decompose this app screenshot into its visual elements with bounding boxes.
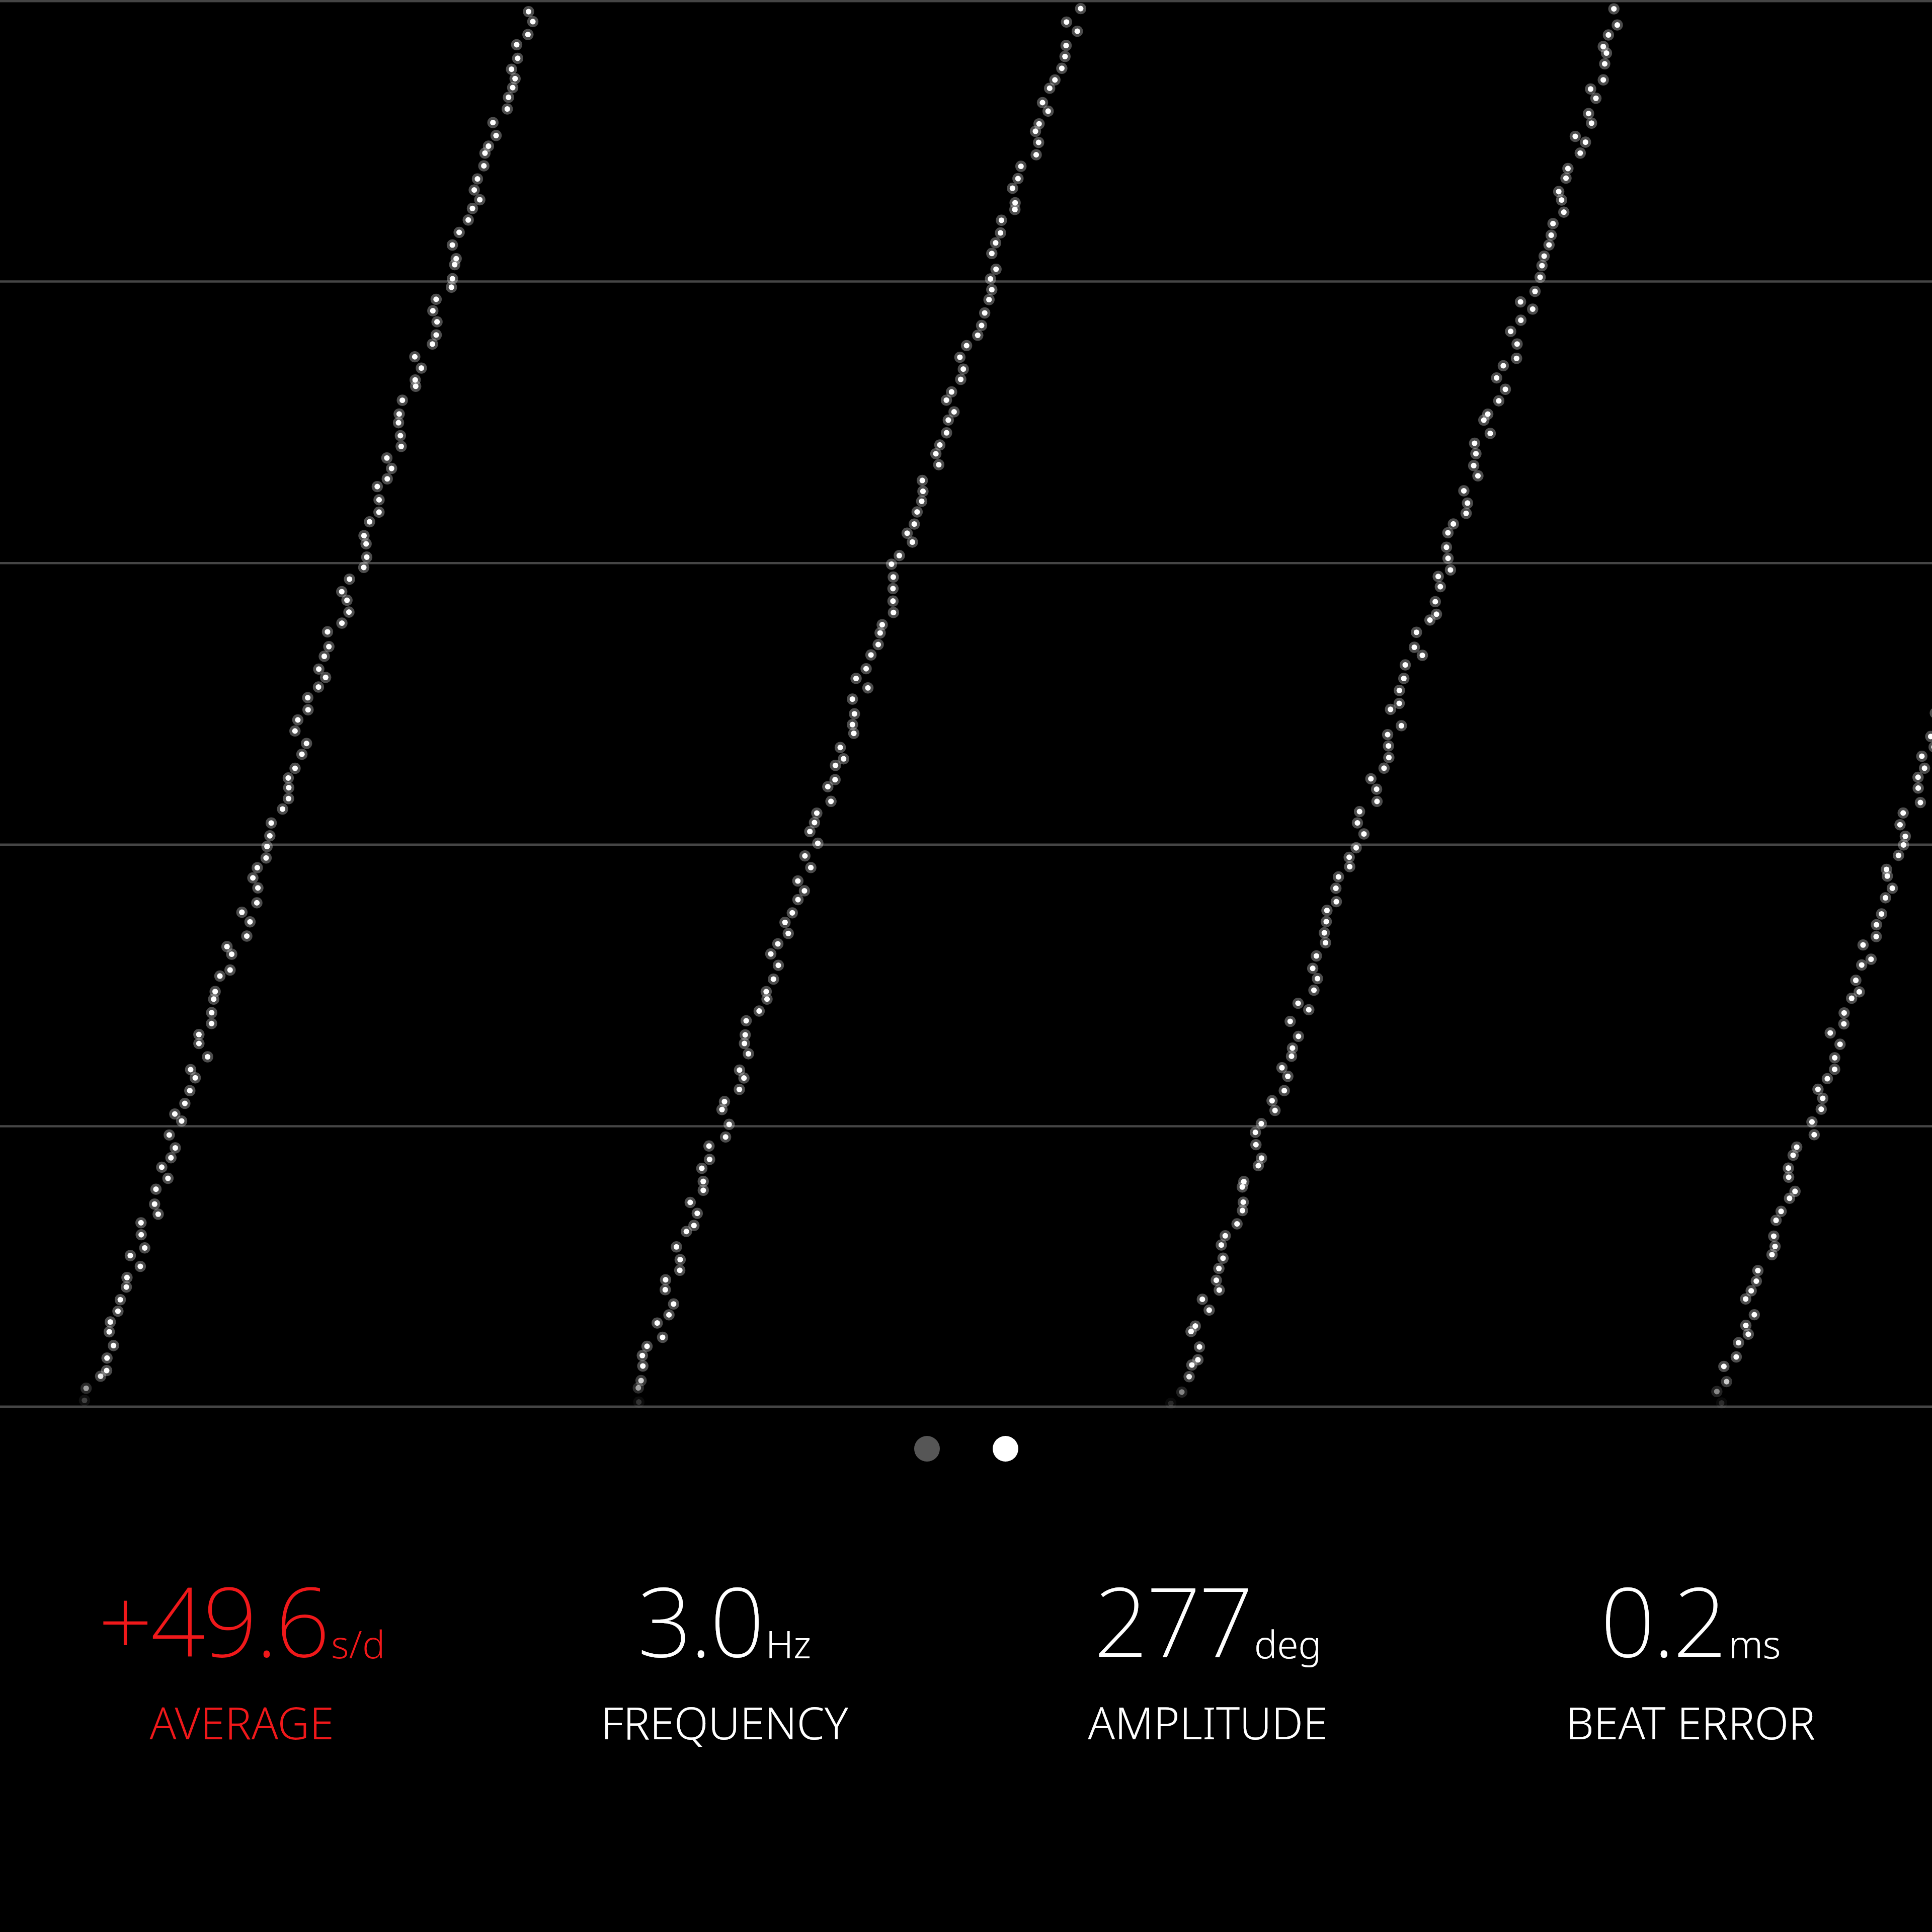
staticText: 0.2: [1600, 1555, 1726, 1685]
staticText: FREQUENCY: [601, 1692, 848, 1752]
button[interactable]: 277: [966, 1535, 1449, 1932]
button[interactable]: 0.2: [1449, 1535, 1932, 1932]
staticText: ms: [1729, 1618, 1781, 1670]
staticText: Hz: [766, 1618, 812, 1670]
staticText: 3.0: [637, 1555, 763, 1685]
button[interactable]: Page 2 selected: [993, 1436, 1018, 1462]
staticText: s/d: [331, 1618, 385, 1670]
staticText: 277: [1094, 1555, 1251, 1685]
button[interactable]: Rate trace graph: [0, 0, 1932, 1408]
staticText: +49.6: [98, 1555, 328, 1685]
staticText: AMPLITUDE: [1088, 1692, 1328, 1752]
button[interactable]: Page 1: [914, 1436, 940, 1462]
button[interactable]: 3.0: [483, 1535, 966, 1932]
staticText: deg: [1254, 1618, 1321, 1670]
staticText: AVERAGE: [149, 1692, 334, 1752]
button[interactable]: +49.6: [0, 1535, 483, 1932]
staticText: BEAT ERROR: [1566, 1692, 1815, 1752]
